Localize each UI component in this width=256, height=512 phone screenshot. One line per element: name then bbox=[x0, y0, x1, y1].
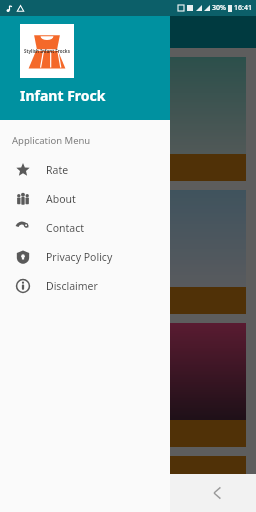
button[interactable]: Home bbox=[136, 474, 180, 512]
button[interactable]: Gallery 2 bbox=[18, 57, 246, 181]
button[interactable]: Gallery 8 bbox=[18, 456, 246, 474]
staticText: Privacy Policy bbox=[46, 250, 113, 264]
staticText: Infant Frock bbox=[20, 86, 106, 105]
button[interactable]: Privacy Policy bbox=[0, 242, 170, 271]
staticText: 16:41 bbox=[234, 3, 252, 13]
button[interactable]: Back bbox=[196, 474, 240, 512]
staticText: Stylish Infant Frocks bbox=[24, 48, 70, 54]
staticText: Contact bbox=[46, 221, 84, 235]
staticText: Rate bbox=[46, 163, 69, 177]
button[interactable]: Gallery 6 bbox=[18, 323, 246, 447]
button[interactable]: About bbox=[0, 184, 170, 213]
button[interactable]: Contact bbox=[0, 213, 170, 242]
staticText: Disclaimer bbox=[46, 279, 98, 293]
button[interactable]: Disclaimer bbox=[0, 271, 170, 300]
staticText: Gallery 2 bbox=[28, 159, 82, 177]
staticText: Application Menu bbox=[12, 134, 91, 147]
button[interactable]: Gallery 4 bbox=[18, 190, 246, 314]
button[interactable]: Rate bbox=[0, 155, 170, 184]
staticText: 30% bbox=[212, 3, 226, 13]
staticText: About bbox=[46, 192, 76, 206]
